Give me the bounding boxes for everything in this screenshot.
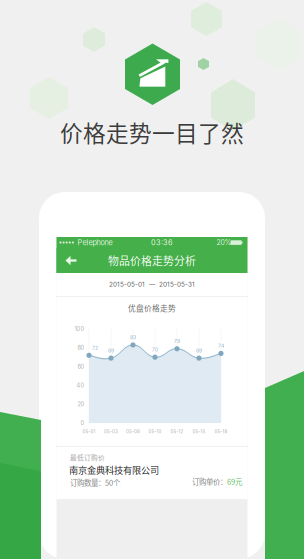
- staticText: 订购单价：: [192, 476, 227, 487]
- staticText: 80: [77, 344, 84, 351]
- staticText: 20: [77, 401, 84, 408]
- staticText: 70: [152, 347, 158, 353]
- staticText: 最低订购价: [70, 452, 105, 462]
- staticText: 100: [74, 326, 84, 332]
- staticText: 60: [77, 363, 84, 370]
- staticText: Pelephone: [77, 238, 112, 247]
- staticText: 03:36: [151, 238, 173, 247]
- staticText: 69: [196, 348, 202, 354]
- staticText: 79: [174, 338, 180, 344]
- staticText: 优盘价格走势: [128, 302, 176, 314]
- staticText: 0: [80, 420, 84, 426]
- button[interactable]: 最低订购价: [56, 447, 247, 499]
- staticText: 83: [130, 334, 136, 340]
- staticText: 69: [108, 348, 114, 354]
- staticText: 05-10: [148, 429, 161, 434]
- staticText: 物品价格走势分析: [108, 253, 196, 268]
- staticText: 05-01: [82, 429, 95, 434]
- staticText: 69元: [227, 476, 242, 487]
- staticText: 05-08: [126, 429, 140, 434]
- staticText: 40: [76, 382, 84, 389]
- staticText: 2015-05-01 — 2015-05-31: [109, 281, 195, 288]
- staticText: 价格走势一目了然: [60, 116, 244, 148]
- staticText: 05-18: [214, 429, 227, 434]
- staticText: 南京金典科技有限公司: [69, 463, 159, 476]
- staticText: 72: [92, 345, 98, 351]
- staticText: 05-15: [192, 429, 205, 434]
- staticText: 74: [218, 343, 224, 349]
- staticText: 05-12: [170, 429, 183, 434]
- staticText: 订购数量：50个: [70, 477, 120, 488]
- button[interactable]: Back: [56, 248, 84, 273]
- button[interactable]: 2015-05-01 — 2015-05-31: [56, 273, 247, 296]
- staticText: 05-03: [104, 429, 118, 434]
- staticText: 20%: [216, 238, 231, 247]
